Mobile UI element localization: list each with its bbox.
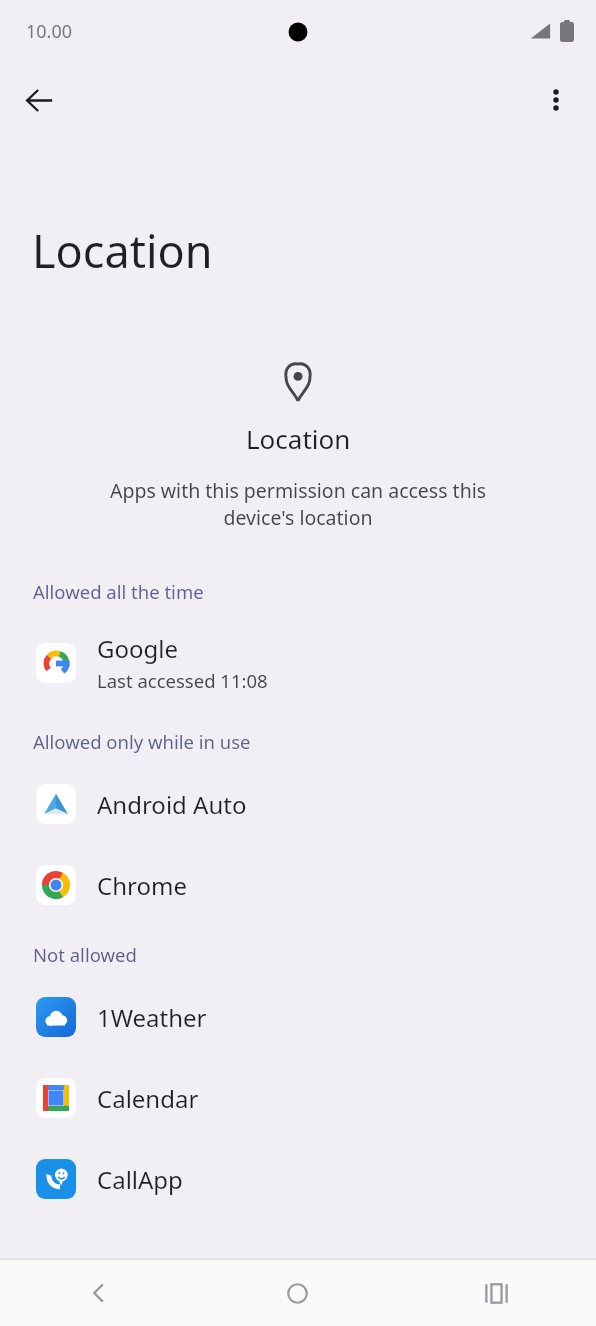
staticText: Google [97,632,178,665]
button[interactable]: Recent apps [397,1260,596,1326]
button[interactable]: CallApp [0,1159,596,1199]
button[interactable]: Google [0,632,596,693]
button[interactable]: Android Auto [0,784,596,824]
staticText: Location [246,421,351,456]
button[interactable]: Back [12,73,66,127]
staticText: Apps with this permission can access thi… [72,477,524,531]
staticText: Not allowed [33,942,137,967]
button[interactable]: 1Weather [0,997,596,1037]
staticText: Android Auto [97,788,247,821]
staticText: Allowed all the time [33,579,204,604]
button[interactable]: Calendar [0,1078,596,1118]
staticText: Chrome [97,869,187,902]
staticText: 10.00 [26,19,73,44]
staticText: Allowed only while in use [33,729,251,754]
staticText: 1Weather [97,1001,207,1034]
staticText: CallApp [97,1163,183,1196]
button[interactable]: Home [198,1260,397,1326]
staticText: Calendar [97,1082,199,1115]
staticText: Last accessed 11:08 [97,668,268,693]
button[interactable]: More options [529,73,583,127]
button[interactable]: Chrome [0,865,596,905]
staticText: Location [32,220,213,281]
button[interactable]: Back [0,1260,198,1326]
